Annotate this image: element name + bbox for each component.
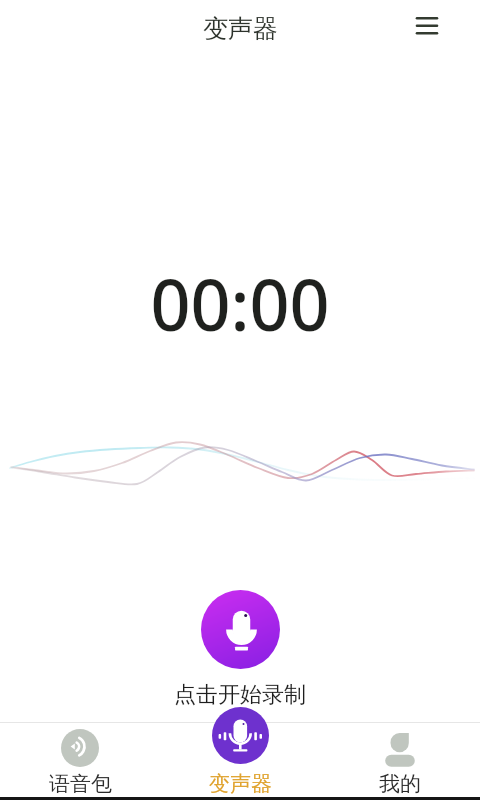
staticText: 00:00 — [0, 256, 480, 351]
staticText: 语音包 — [49, 771, 112, 797]
staticText: 我的 — [379, 771, 421, 797]
button[interactable]: 变声器 — [160, 723, 320, 798]
staticText: 变声器 — [209, 771, 272, 797]
button[interactable]: Start recording — [201, 590, 280, 669]
button[interactable]: 我的 — [320, 723, 480, 798]
button[interactable]: Menu — [407, 6, 447, 46]
button[interactable]: 语音包 — [0, 723, 160, 798]
staticText: 点击开始录制 — [174, 681, 306, 709]
staticText: 变声器 — [203, 13, 278, 44]
